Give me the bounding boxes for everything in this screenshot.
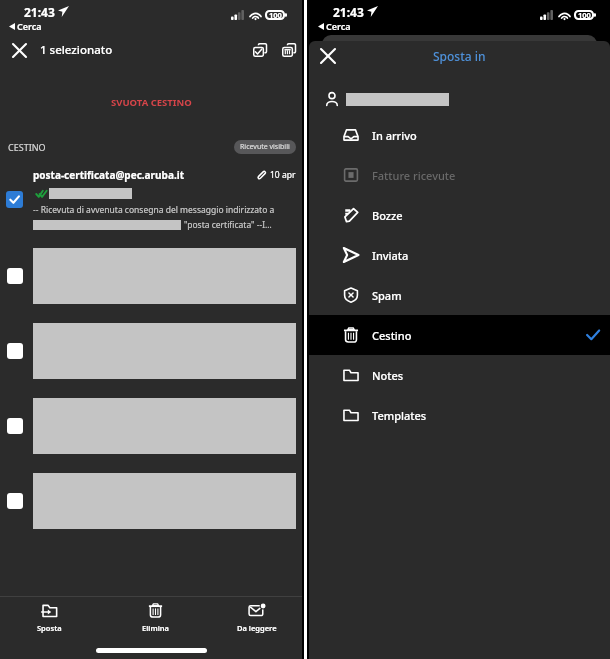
staticText: Da leggere: [237, 623, 277, 633]
staticText: Cerca: [17, 20, 42, 32]
staticText: Inviata: [372, 248, 409, 263]
button[interactable]: [309, 88, 610, 110]
button[interactable]: [0, 323, 302, 379]
staticText: SVUOTA CESTINO: [111, 96, 192, 108]
button[interactable]: Inviata: [309, 235, 610, 275]
button[interactable]: Bozze: [309, 195, 610, 235]
staticText: Ricevute visibili: [240, 142, 290, 152]
staticText: "posta certificata" --I…: [184, 219, 272, 231]
button[interactable]: Spam: [309, 275, 610, 315]
staticText: 21:43: [24, 4, 55, 20]
button[interactable]: Notes: [309, 355, 610, 395]
button[interactable]: Elimina: [98, 597, 212, 639]
button[interactable]: posta-certificata@pec.aruba.it: [0, 165, 302, 233]
staticText: 21:43: [333, 4, 364, 20]
button[interactable]: In arrivo: [309, 115, 610, 155]
button[interactable]: Seleziona tutto: [247, 38, 273, 62]
button[interactable]: Templates: [309, 395, 610, 435]
staticText: posta-certificata@pec.aruba.it: [33, 168, 185, 182]
button[interactable]: Chiudi: [6, 38, 32, 62]
staticText: 1 selezionato: [40, 42, 113, 58]
staticText: Cestino: [372, 328, 412, 343]
button[interactable]: Chiudi: [315, 43, 341, 69]
staticText: Notes: [372, 368, 404, 383]
button[interactable]: [0, 398, 302, 454]
button[interactable]: Sposta: [0, 597, 98, 639]
staticText: Sposta: [37, 623, 62, 633]
staticText: Elimina: [142, 623, 169, 633]
staticText: Sposta in: [433, 48, 486, 64]
staticText: Cerca: [326, 20, 351, 32]
staticText: Templates: [372, 408, 427, 423]
staticText: -- Ricevuta di avvenuta consegna del mes…: [33, 204, 275, 216]
button[interactable]: Cestino: [309, 315, 610, 355]
staticText: Fatture ricevute: [372, 168, 456, 183]
staticText: 100: [578, 10, 591, 20]
staticText: In arrivo: [372, 128, 417, 143]
staticText: 100: [269, 10, 282, 20]
staticText: CESTINO: [8, 141, 46, 153]
button[interactable]: [0, 248, 302, 304]
staticText: Spam: [372, 288, 402, 303]
button[interactable]: SVUOTA CESTINO: [101, 94, 202, 110]
staticText: 10 apr: [270, 169, 296, 181]
button[interactable]: Ricevute visibili: [234, 140, 296, 154]
staticText: Bozze: [372, 208, 403, 223]
button[interactable]: [0, 473, 302, 529]
button[interactable]: Filtra: [276, 38, 302, 62]
button[interactable]: Fatture ricevute: [309, 155, 610, 195]
button[interactable]: Da leggere: [212, 597, 302, 639]
